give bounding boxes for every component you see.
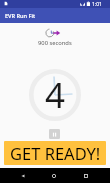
button[interactable]: Pause bbox=[49, 129, 60, 139]
staticText: 900 seconds bbox=[38, 39, 72, 47]
staticText: 1:01 bbox=[92, 1, 102, 8]
button[interactable]: Home bbox=[44, 168, 64, 183]
staticText: EVR Run Fit bbox=[5, 12, 36, 20]
staticText: GET READY! bbox=[10, 142, 101, 164]
button[interactable]: GET READY! bbox=[4, 141, 106, 165]
staticText: 4 bbox=[45, 71, 66, 119]
button[interactable]: Recent apps bbox=[76, 168, 96, 183]
button[interactable]: Back bbox=[13, 168, 33, 183]
